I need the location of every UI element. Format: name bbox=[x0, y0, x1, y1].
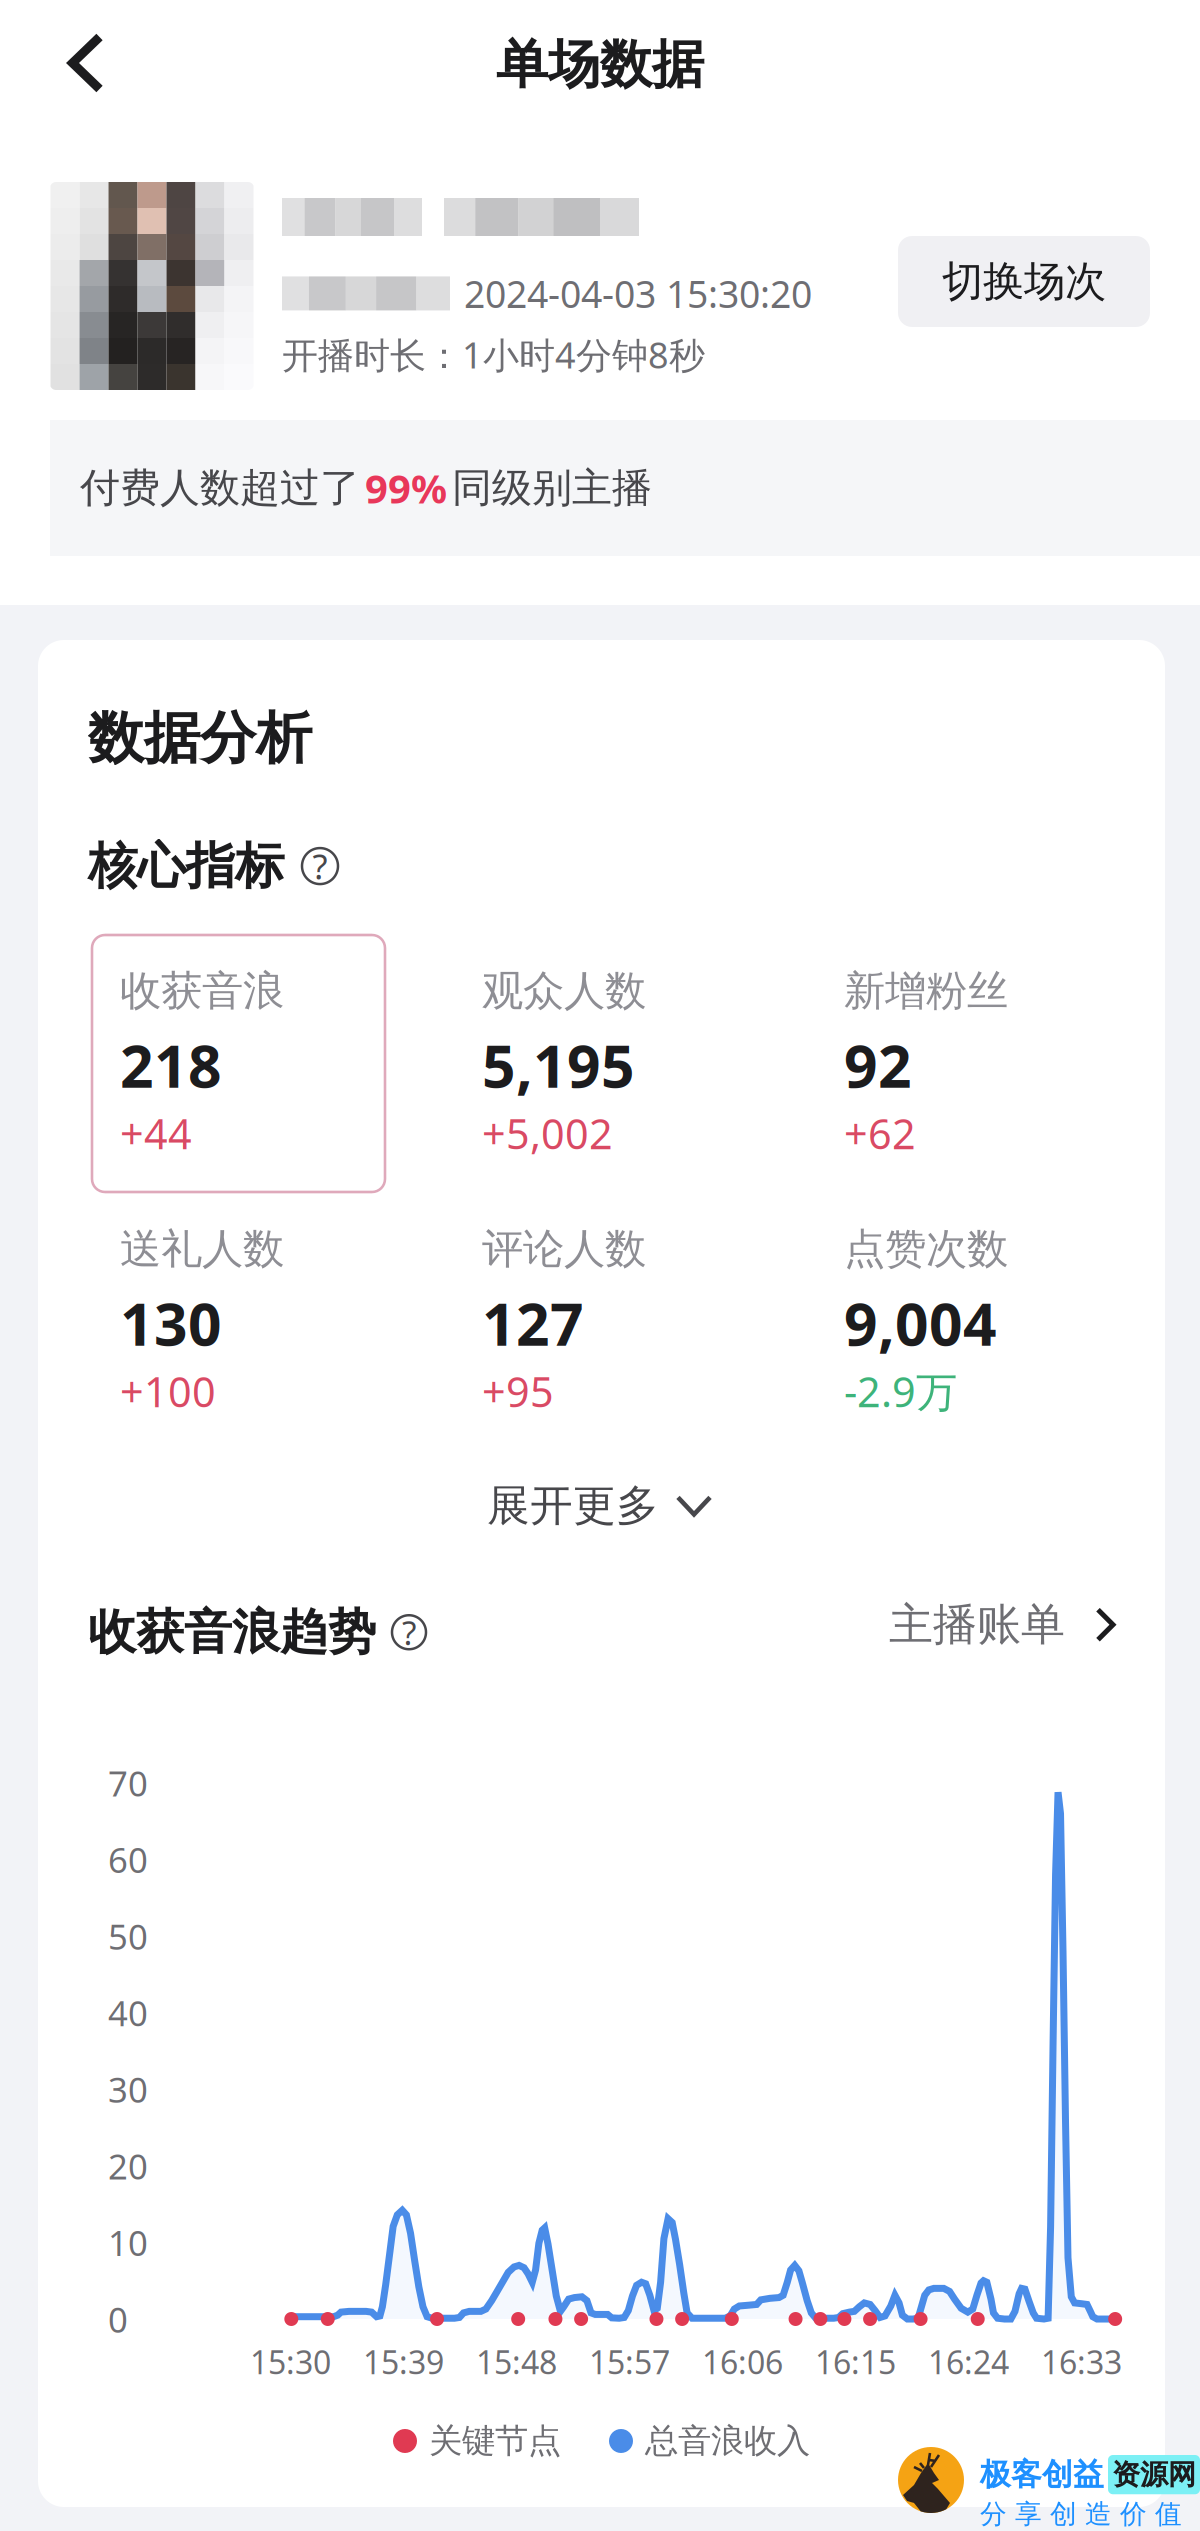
staticText: 0 bbox=[108, 2296, 128, 2343]
staticText: 50 bbox=[108, 1913, 148, 1960]
staticText: +62 bbox=[844, 1105, 916, 1161]
staticText: 数据分析 bbox=[88, 703, 312, 773]
staticText: 收获音浪 bbox=[120, 965, 284, 1017]
staticText: 付费人数超过了 bbox=[80, 463, 360, 513]
staticText: ? bbox=[312, 842, 327, 890]
staticText: +95 bbox=[482, 1363, 554, 1419]
staticText: +44 bbox=[120, 1105, 192, 1161]
staticText: 99% bbox=[365, 461, 447, 515]
staticText: 218 bbox=[120, 1025, 222, 1105]
staticText: +100 bbox=[120, 1363, 216, 1419]
staticText: 5,195 bbox=[482, 1025, 635, 1105]
staticText: 2024-04-03 15:30:20 bbox=[464, 268, 812, 319]
staticText: 15:30 bbox=[250, 2340, 331, 2384]
staticText: 主播账单 bbox=[889, 1597, 1065, 1652]
staticText: 127 bbox=[482, 1283, 584, 1363]
staticText: 40 bbox=[108, 1989, 148, 2036]
staticText: 核心指标 bbox=[88, 835, 284, 897]
staticText: 20 bbox=[108, 2142, 148, 2190]
staticText: 30 bbox=[108, 2066, 148, 2113]
staticText: 15:39 bbox=[363, 2340, 444, 2384]
staticText: 展开更多 bbox=[487, 1479, 659, 1533]
staticText: 点赞次数 bbox=[844, 1223, 1008, 1275]
staticText: 16:06 bbox=[702, 2340, 783, 2384]
staticText: 130 bbox=[120, 1283, 222, 1363]
staticText: 送礼人数 bbox=[120, 1223, 284, 1275]
staticText: 分 享 创 造 价 值 bbox=[980, 2497, 1182, 2531]
staticText: 9,004 bbox=[844, 1283, 997, 1363]
staticText: 15:48 bbox=[476, 2340, 557, 2384]
staticText: 60 bbox=[108, 1836, 148, 1883]
staticText: +5,002 bbox=[482, 1105, 613, 1161]
staticText: 16:24 bbox=[928, 2340, 1009, 2384]
staticText: 总音浪收入 bbox=[645, 2420, 810, 2462]
button[interactable]: 展开更多 bbox=[463, 1465, 737, 1547]
button[interactable]: 主播账单 bbox=[879, 1587, 1127, 1662]
staticText: 极客创益 bbox=[980, 2455, 1104, 2494]
staticText: 16:33 bbox=[1041, 2340, 1122, 2384]
staticText: 关键节点 bbox=[429, 2420, 561, 2462]
button[interactable]: Back bbox=[31, 13, 141, 113]
staticText: 切换场次 bbox=[942, 255, 1106, 308]
staticText: 16:15 bbox=[815, 2340, 896, 2384]
staticText: 同级别主播 bbox=[452, 463, 652, 513]
staticText: 10 bbox=[108, 2219, 148, 2266]
staticText: ? bbox=[402, 1609, 416, 1655]
staticText: 新增粉丝 bbox=[844, 965, 1008, 1017]
staticText: 70 bbox=[108, 1759, 148, 1807]
staticText: 评论人数 bbox=[482, 1223, 646, 1275]
staticText: 15:57 bbox=[589, 2340, 670, 2384]
staticText: 开播时长：1小时4分钟8秒 bbox=[282, 330, 705, 379]
button[interactable]: 切换场次 bbox=[898, 236, 1150, 327]
staticText: 92 bbox=[844, 1025, 912, 1105]
staticText: 收获音浪趋势 bbox=[88, 1602, 376, 1662]
staticText: -2.9万 bbox=[844, 1363, 957, 1419]
staticText: 资源网 bbox=[1112, 2457, 1196, 2492]
staticText: 单场数据 bbox=[496, 32, 704, 97]
staticText: 观众人数 bbox=[482, 965, 646, 1017]
